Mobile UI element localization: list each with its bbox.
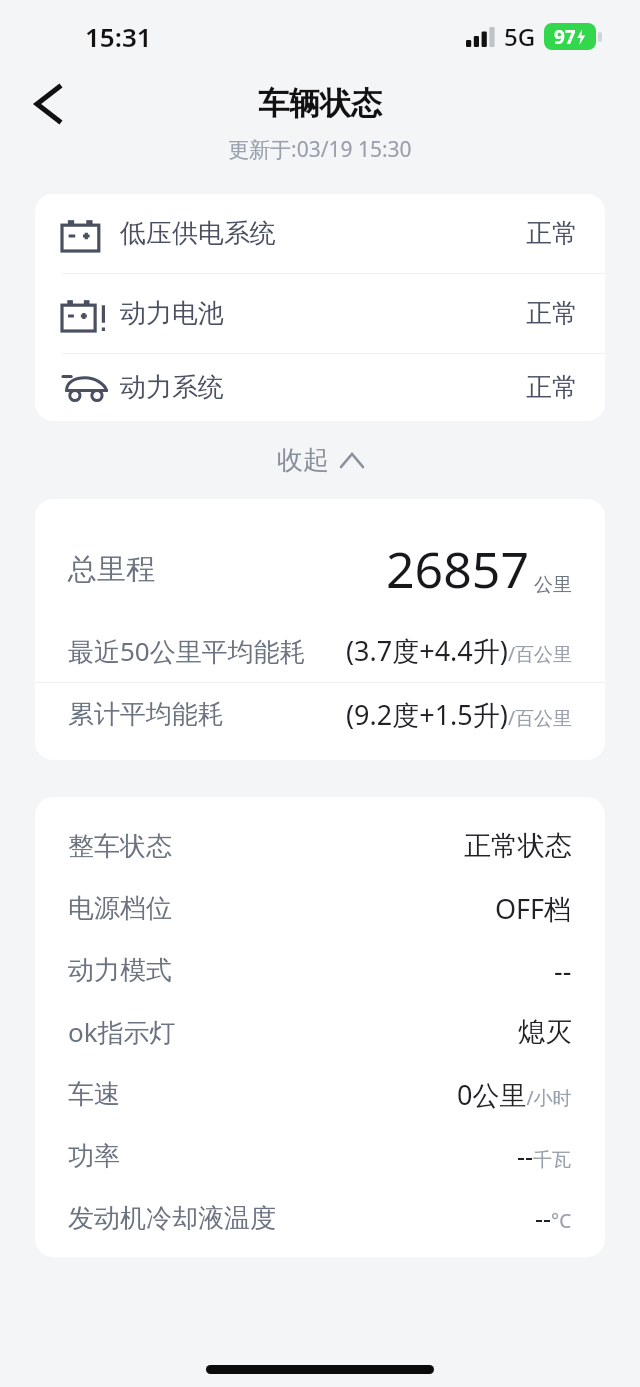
staticText: 车辆状态 (258, 84, 382, 123)
staticText: 正常 (526, 217, 578, 250)
staticText: 累计平均能耗 (68, 698, 224, 731)
button[interactable]: 功率 (35, 1125, 605, 1187)
button[interactable]: 电源档位 (35, 877, 605, 939)
staticText: --千瓦 (517, 1139, 572, 1173)
staticText: 电源档位 (68, 892, 172, 925)
staticText: 正常状态 (464, 829, 572, 863)
staticText: 动力电池 (120, 297, 224, 330)
staticText: 车速 (68, 1078, 120, 1111)
button[interactable]: 最近50公里平均能耗 (35, 619, 605, 682)
staticText: 发动机冷却液温度 (68, 1202, 276, 1235)
staticText: 97 (554, 24, 576, 50)
staticText: 0公里/小时 (457, 1076, 572, 1113)
button[interactable]: 收起 (0, 421, 640, 499)
button[interactable]: ok指示灯 (35, 1001, 605, 1063)
staticText: ok指示灯 (68, 1014, 176, 1050)
staticText: 15:31 (85, 19, 152, 54)
staticText: 公里 (534, 573, 572, 597)
button[interactable]: 车速 (35, 1063, 605, 1125)
staticText: 5G (504, 20, 536, 53)
staticText: 功率 (68, 1140, 120, 1173)
staticText: 正常 (526, 371, 578, 404)
staticText: 总里程 (68, 551, 155, 588)
staticText: OFF档 (495, 890, 572, 927)
button[interactable]: 动力电池 (35, 274, 605, 353)
staticText: 低压供电系统 (120, 217, 276, 250)
button[interactable]: Back (20, 76, 76, 132)
staticText: (3.7度+4.4升)/百公里 (346, 632, 572, 669)
staticText: 收起 (277, 444, 329, 477)
staticText: (9.2度+1.5升)/百公里 (346, 696, 572, 733)
staticText: 最近50公里平均能耗 (68, 633, 306, 669)
staticText: --°C (535, 1201, 572, 1235)
staticText: 整车状态 (68, 830, 172, 863)
button[interactable]: 低压供电系统 (35, 194, 605, 273)
staticText: -- (554, 952, 572, 989)
button[interactable]: 动力模式 (35, 939, 605, 1001)
button[interactable]: 整车状态 (35, 815, 605, 877)
button[interactable]: 动力系统 (35, 354, 605, 421)
staticText: 动力系统 (120, 371, 224, 404)
button[interactable]: 累计平均能耗 (35, 683, 605, 746)
staticText: 更新于:03/19 15:30 (228, 135, 412, 164)
staticText: 26857 (386, 535, 529, 603)
button[interactable]: 发动机冷却液温度 (35, 1187, 605, 1249)
staticText: 正常 (526, 297, 578, 330)
staticText: 动力模式 (68, 954, 172, 987)
button[interactable]: 总里程 (35, 519, 605, 619)
staticText: 熄灭 (518, 1015, 572, 1049)
